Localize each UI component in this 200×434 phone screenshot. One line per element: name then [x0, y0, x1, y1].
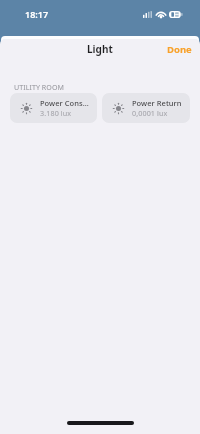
staticText: 18:17: [25, 8, 49, 20]
other: Brightness sensor: [113, 103, 124, 114]
other: Brightness sensor: [21, 103, 32, 114]
button[interactable]: Brightness sensor: [10, 93, 97, 123]
staticText: 0,0001 lux: [132, 108, 168, 118]
button[interactable]: Brightness sensor: [102, 93, 190, 123]
staticText: Power Return: [132, 98, 182, 108]
button[interactable]: Done: [159, 39, 200, 60]
staticText: Done: [167, 43, 192, 56]
staticText: Power Cons...: [40, 98, 89, 108]
staticText: UTILITY ROOM: [14, 82, 64, 92]
staticText: 3.180 lux: [40, 108, 72, 118]
staticText: Light: [87, 42, 113, 56]
